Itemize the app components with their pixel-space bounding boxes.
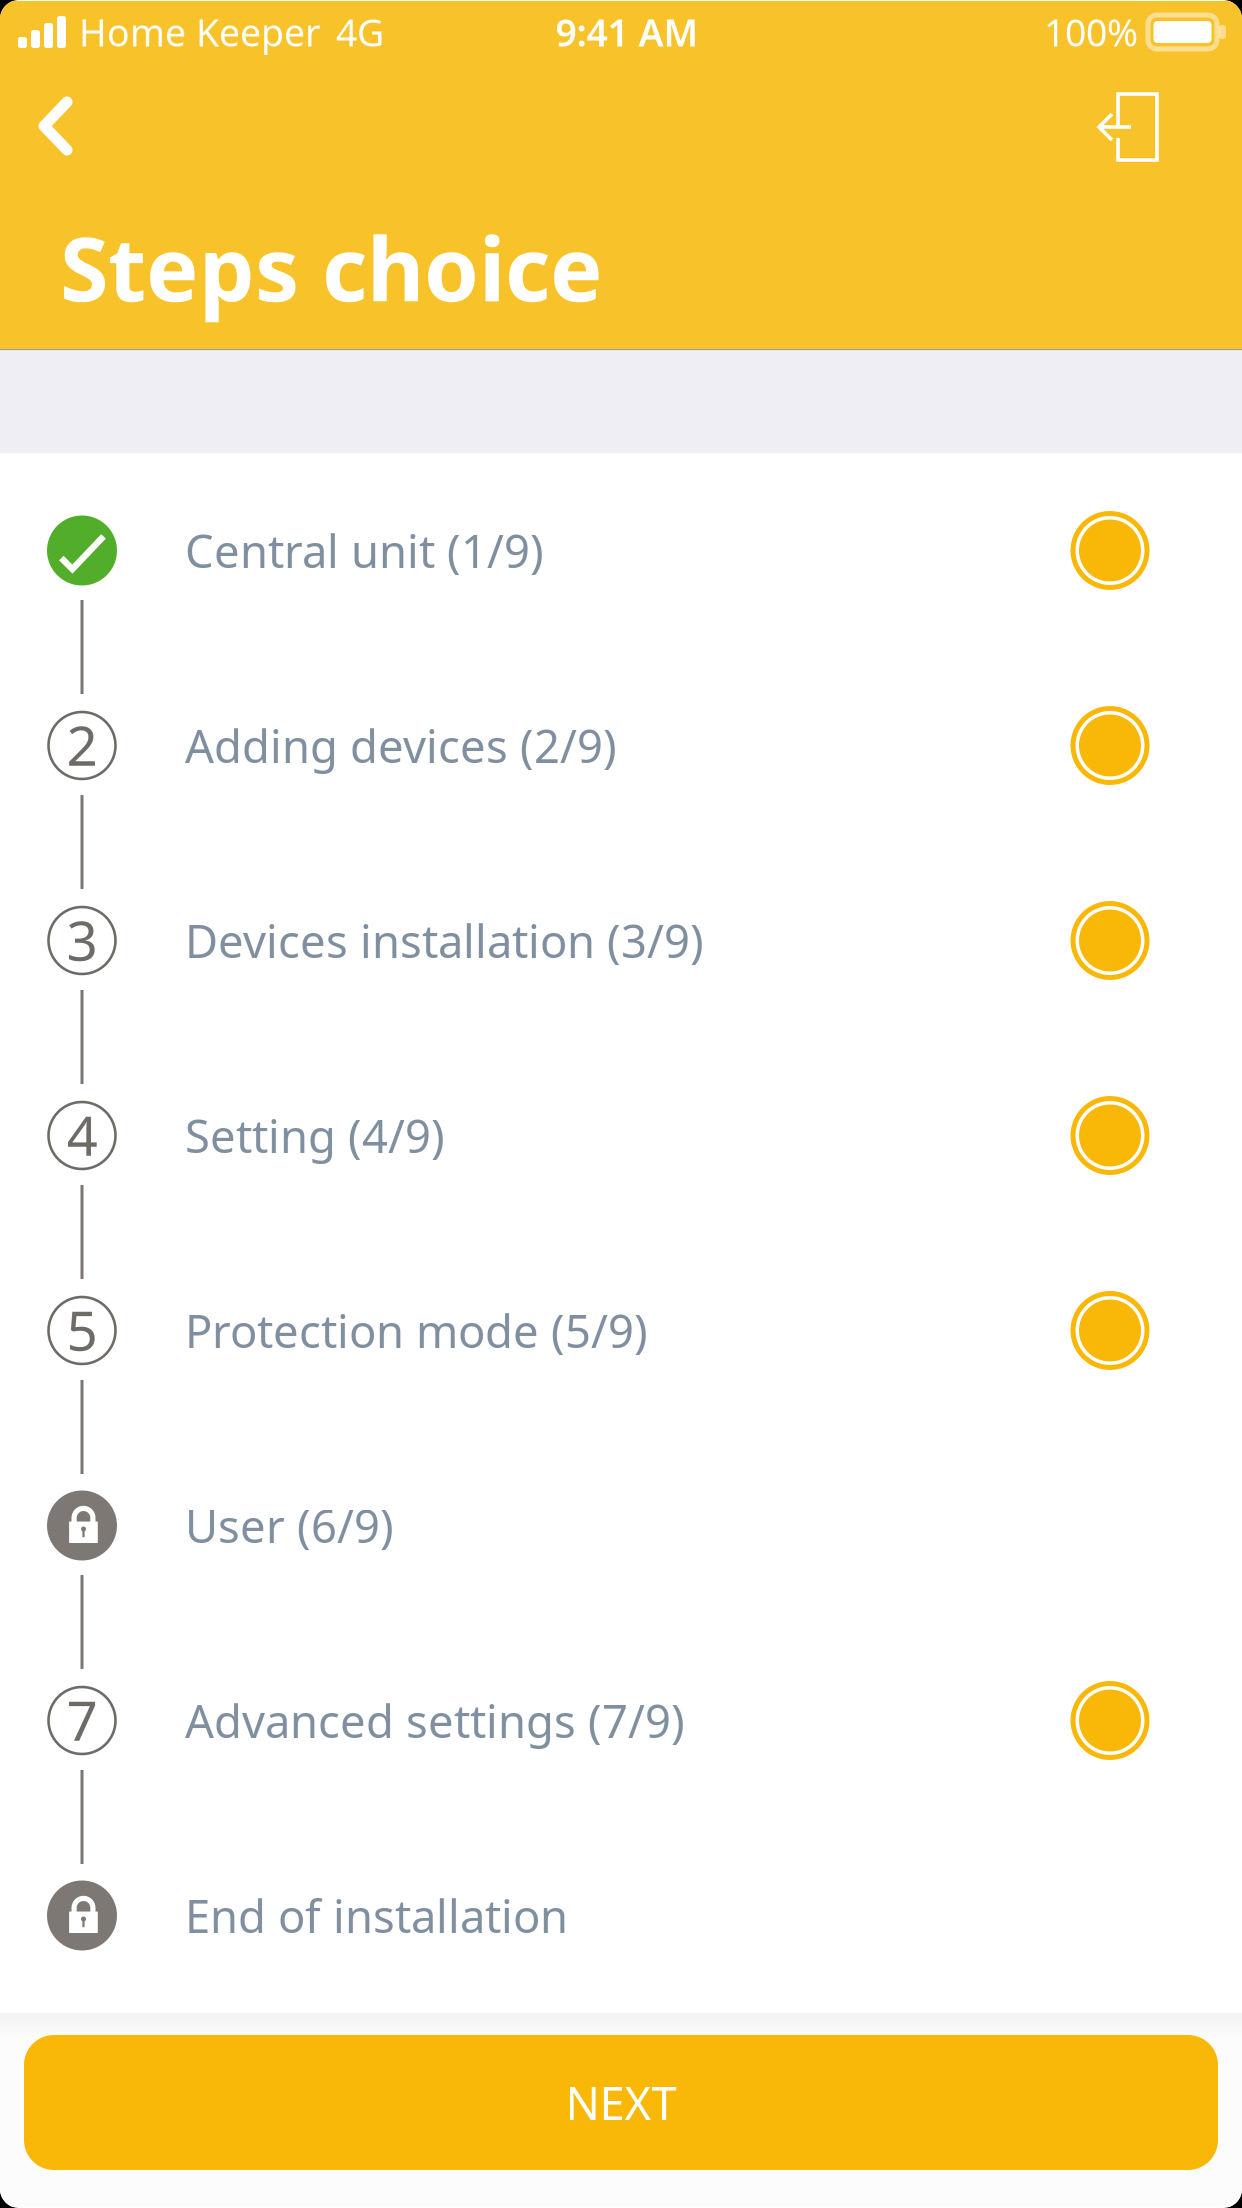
button[interactable]: Log out bbox=[1057, 63, 1185, 159]
staticText: 4 bbox=[66, 1098, 97, 1171]
staticText: 2 bbox=[66, 708, 97, 781]
staticText: Protection mode (5/9) bbox=[185, 1300, 648, 1361]
staticText: Central unit (1/9) bbox=[185, 520, 544, 581]
staticText: Advanced settings (7/9) bbox=[185, 1690, 685, 1751]
staticText: 100% bbox=[1044, 7, 1138, 57]
button[interactable]: Back bbox=[0, 63, 112, 159]
staticText: 7 bbox=[66, 1683, 97, 1756]
button[interactable]: 3 bbox=[0, 843, 1242, 1038]
staticText: Setting (4/9) bbox=[185, 1105, 445, 1166]
staticText: 5 bbox=[66, 1293, 97, 1366]
staticText: Steps choice bbox=[60, 209, 603, 325]
staticText: Devices installation (3/9) bbox=[185, 910, 704, 971]
button[interactable]: Central unit (1/9) bbox=[0, 453, 1242, 648]
staticText: 4G bbox=[336, 7, 384, 57]
button[interactable]: 4 bbox=[0, 1038, 1242, 1233]
button[interactable]: User (6/9) bbox=[0, 1428, 1242, 1623]
staticText: NEXT bbox=[565, 2072, 676, 2133]
staticText: 3 bbox=[66, 903, 97, 976]
staticText: End of installation bbox=[185, 1885, 568, 1946]
staticText: 9:41 AM bbox=[555, 7, 698, 57]
staticText: User (6/9) bbox=[185, 1495, 394, 1556]
staticText: Home Keeper bbox=[79, 7, 320, 57]
button[interactable]: 7 bbox=[0, 1623, 1242, 1818]
staticText: Adding devices (2/9) bbox=[185, 715, 617, 776]
button[interactable]: NEXT bbox=[24, 2035, 1218, 2170]
button[interactable]: 5 bbox=[0, 1233, 1242, 1428]
button[interactable]: 2 bbox=[0, 648, 1242, 843]
button[interactable]: End of installation bbox=[0, 1818, 1242, 2013]
